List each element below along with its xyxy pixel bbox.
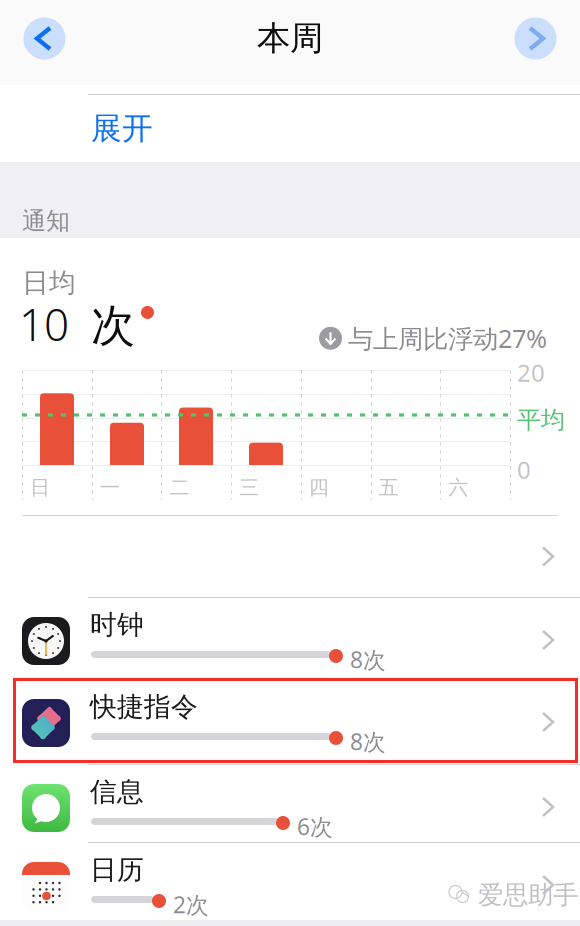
staticText: 20 [517, 356, 545, 389]
staticText: 通知 [22, 206, 70, 236]
staticText: 6次 [297, 811, 333, 842]
staticText: 日 [30, 475, 50, 500]
staticText: 8次 [350, 726, 386, 757]
staticText: 四 [309, 475, 329, 500]
staticText: 与上周比浮动27% [348, 321, 547, 355]
staticText: 二 [169, 475, 189, 500]
button[interactable]: 上一周 [13, 7, 75, 69]
button[interactable]: 日历 [0, 843, 580, 926]
staticText: 日均 [22, 266, 76, 300]
button[interactable]: 时钟 [0, 598, 580, 682]
staticText: 展开 [91, 109, 153, 148]
staticText: 平均 [517, 405, 565, 435]
staticText: 日历 [90, 853, 144, 887]
staticText: 爱思助手 [478, 879, 578, 911]
staticText: 快捷指令 [90, 690, 198, 724]
staticText: 0 [517, 453, 531, 486]
button[interactable]: 下一周 [504, 7, 566, 69]
staticText: 8次 [350, 644, 386, 675]
staticText: 五 [379, 475, 399, 500]
staticText: 本周 [257, 17, 323, 59]
staticText: 时钟 [90, 608, 144, 642]
staticText: 信息 [90, 775, 144, 809]
staticText: 三 [239, 475, 259, 500]
staticText: 六 [448, 475, 468, 500]
button[interactable]: 展开 [0, 95, 580, 162]
staticText: 一 [100, 475, 120, 500]
staticText: 10 次 [19, 294, 135, 354]
button[interactable]: 快捷指令 [0, 680, 580, 764]
staticText: 2次 [173, 889, 209, 920]
button[interactable]: 信息 [0, 765, 580, 849]
